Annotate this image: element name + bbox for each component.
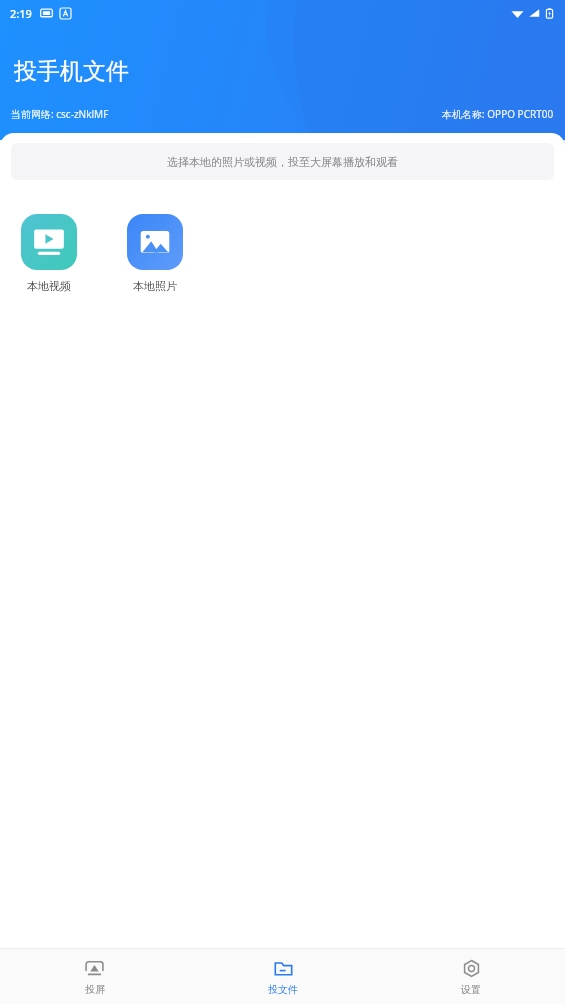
staticText: 本地照片 [133,279,177,293]
staticText: 当前网络: csc-zNklMF [11,107,109,121]
button[interactable]: 投屏 [0,949,189,1004]
staticText: 2:19 [10,6,32,21]
button[interactable]: 本地照片 [127,214,183,293]
button[interactable]: 本地视频 [21,214,77,293]
staticText: 投文件 [268,983,298,996]
button[interactable]: 投文件 [189,949,377,1004]
staticText: 设置 [461,983,481,996]
button[interactable]: 设置 [377,949,565,1004]
staticText: 投手机文件 [14,57,129,86]
staticText: 本机名称: OPPO PCRT00 [442,107,554,121]
staticText: 选择本地的照片或视频，投至大屏幕播放和观看 [167,155,398,169]
staticText: 投屏 [85,983,105,996]
staticText: 本地视频 [27,279,71,293]
